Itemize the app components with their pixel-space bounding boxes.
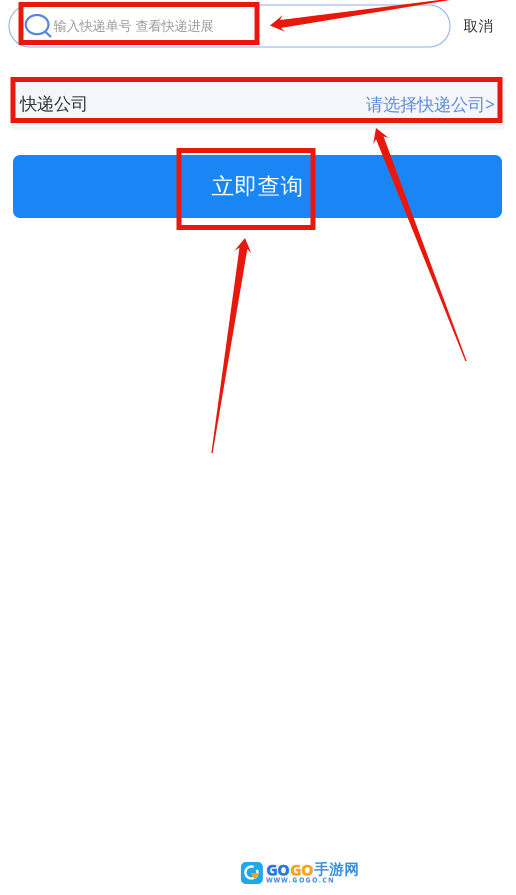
button[interactable]: 立即查询 [13,155,502,218]
staticText: 输入快递单号 查看快递进展 [53,18,213,34]
button[interactable]: 取消 [450,5,507,47]
button[interactable]: 快递公司 [10,78,505,130]
staticText: GO [266,859,290,880]
staticText: 请选择快递公司> [366,92,495,115]
staticText: WWW.GOGO.CN [266,876,333,884]
staticText: GO [290,859,314,880]
staticText: 取消 [463,17,493,35]
staticText: 立即查询 [211,173,303,200]
staticText: 手游网 [314,860,359,878]
button[interactable]: 输入快递单号 查看快递进展 [9,5,450,47]
staticText: 快递公司 [20,93,88,115]
